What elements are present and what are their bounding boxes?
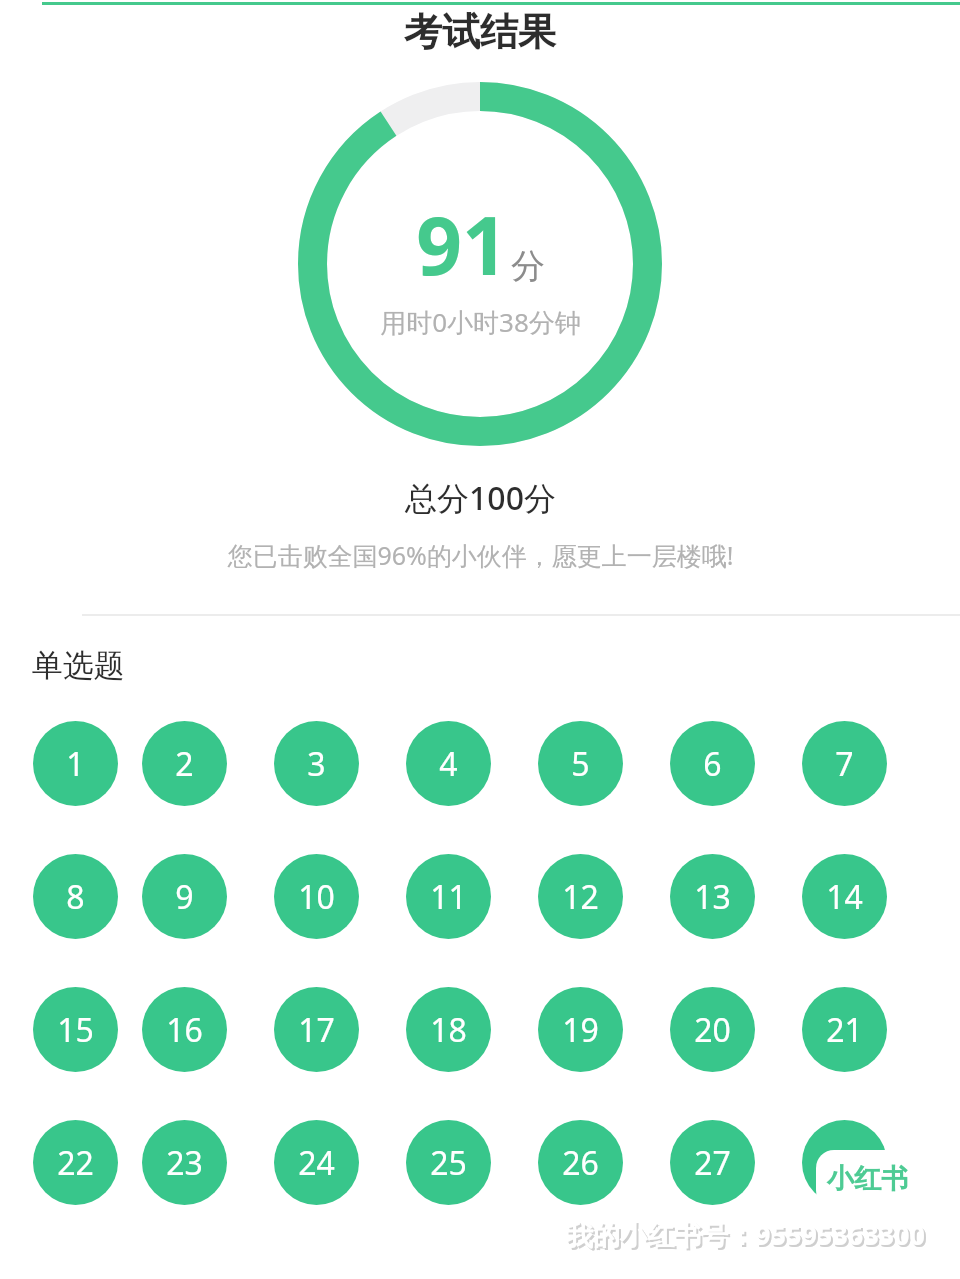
staticText: 18 [430, 1008, 467, 1052]
button[interactable]: 16 [142, 987, 227, 1072]
staticText: 26 [562, 1141, 599, 1185]
staticText: 8 [66, 875, 85, 919]
staticText: 11 [430, 875, 467, 919]
button[interactable]: 24 [274, 1120, 359, 1205]
button[interactable]: 7 [802, 721, 887, 806]
other: 小红书 [816, 1150, 918, 1208]
staticText: 我的小红书号：95595363300 [566, 1216, 925, 1253]
button[interactable]: 12 [538, 854, 623, 939]
button[interactable]: 5 [538, 721, 623, 806]
staticText: 2 [175, 742, 194, 786]
staticText: 20 [694, 1008, 731, 1052]
button[interactable]: 3 [274, 721, 359, 806]
staticText: 15 [57, 1008, 94, 1052]
staticText: 我的小红书号：95595363300 [568, 1218, 927, 1255]
button[interactable]: 25 [406, 1120, 491, 1205]
button[interactable]: 4 [406, 721, 491, 806]
staticText: 16 [166, 1008, 203, 1052]
button[interactable]: 27 [670, 1120, 755, 1205]
staticText: 21 [826, 1008, 863, 1052]
staticText: 22 [57, 1141, 94, 1185]
staticText: 用时0小时38分钟 [380, 304, 581, 340]
button[interactable]: 20 [670, 987, 755, 1072]
staticText: 7 [835, 742, 854, 786]
button[interactable]: 28 [802, 1120, 887, 1205]
button[interactable]: 18 [406, 987, 491, 1072]
button[interactable]: 21 [802, 987, 887, 1072]
staticText: 分 [511, 245, 545, 288]
staticText: 小红书 [827, 1162, 908, 1196]
button[interactable]: 2 [142, 721, 227, 806]
staticText: 总分100分 [405, 476, 556, 520]
button[interactable]: 8 [33, 854, 118, 939]
button[interactable]: 15 [33, 987, 118, 1072]
staticText: 12 [562, 875, 599, 919]
button[interactable]: 9 [142, 854, 227, 939]
staticText: 13 [694, 875, 731, 919]
button[interactable]: 14 [802, 854, 887, 939]
button[interactable]: 23 [142, 1120, 227, 1205]
staticText: 9 [175, 875, 194, 919]
button[interactable]: 22 [33, 1120, 118, 1205]
staticText: 考试结果 [404, 8, 556, 56]
staticText: 19 [562, 1008, 599, 1052]
staticText: 23 [166, 1141, 203, 1185]
staticText: 24 [298, 1141, 335, 1185]
staticText: 3 [307, 742, 326, 786]
staticText: 28 [826, 1141, 863, 1185]
button[interactable]: 10 [274, 854, 359, 939]
button[interactable]: 11 [406, 854, 491, 939]
staticText: 5 [571, 742, 590, 786]
staticText: 10 [298, 875, 335, 919]
button[interactable]: 17 [274, 987, 359, 1072]
staticText: 4 [439, 742, 458, 786]
button[interactable]: 13 [670, 854, 755, 939]
staticText: 91 [416, 189, 508, 298]
staticText: 单选题 [32, 646, 125, 685]
staticText: 6 [703, 742, 722, 786]
staticText: 14 [826, 875, 863, 919]
staticText: 您已击败全国96%的小伙伴，愿更上一层楼哦! [227, 538, 734, 572]
button[interactable]: 6 [670, 721, 755, 806]
button[interactable]: 19 [538, 987, 623, 1072]
staticText: 1 [66, 742, 85, 786]
staticText: 25 [430, 1141, 467, 1185]
button[interactable]: 26 [538, 1120, 623, 1205]
staticText: 27 [694, 1141, 731, 1185]
staticText: 17 [298, 1008, 335, 1052]
button[interactable]: 1 [33, 721, 118, 806]
